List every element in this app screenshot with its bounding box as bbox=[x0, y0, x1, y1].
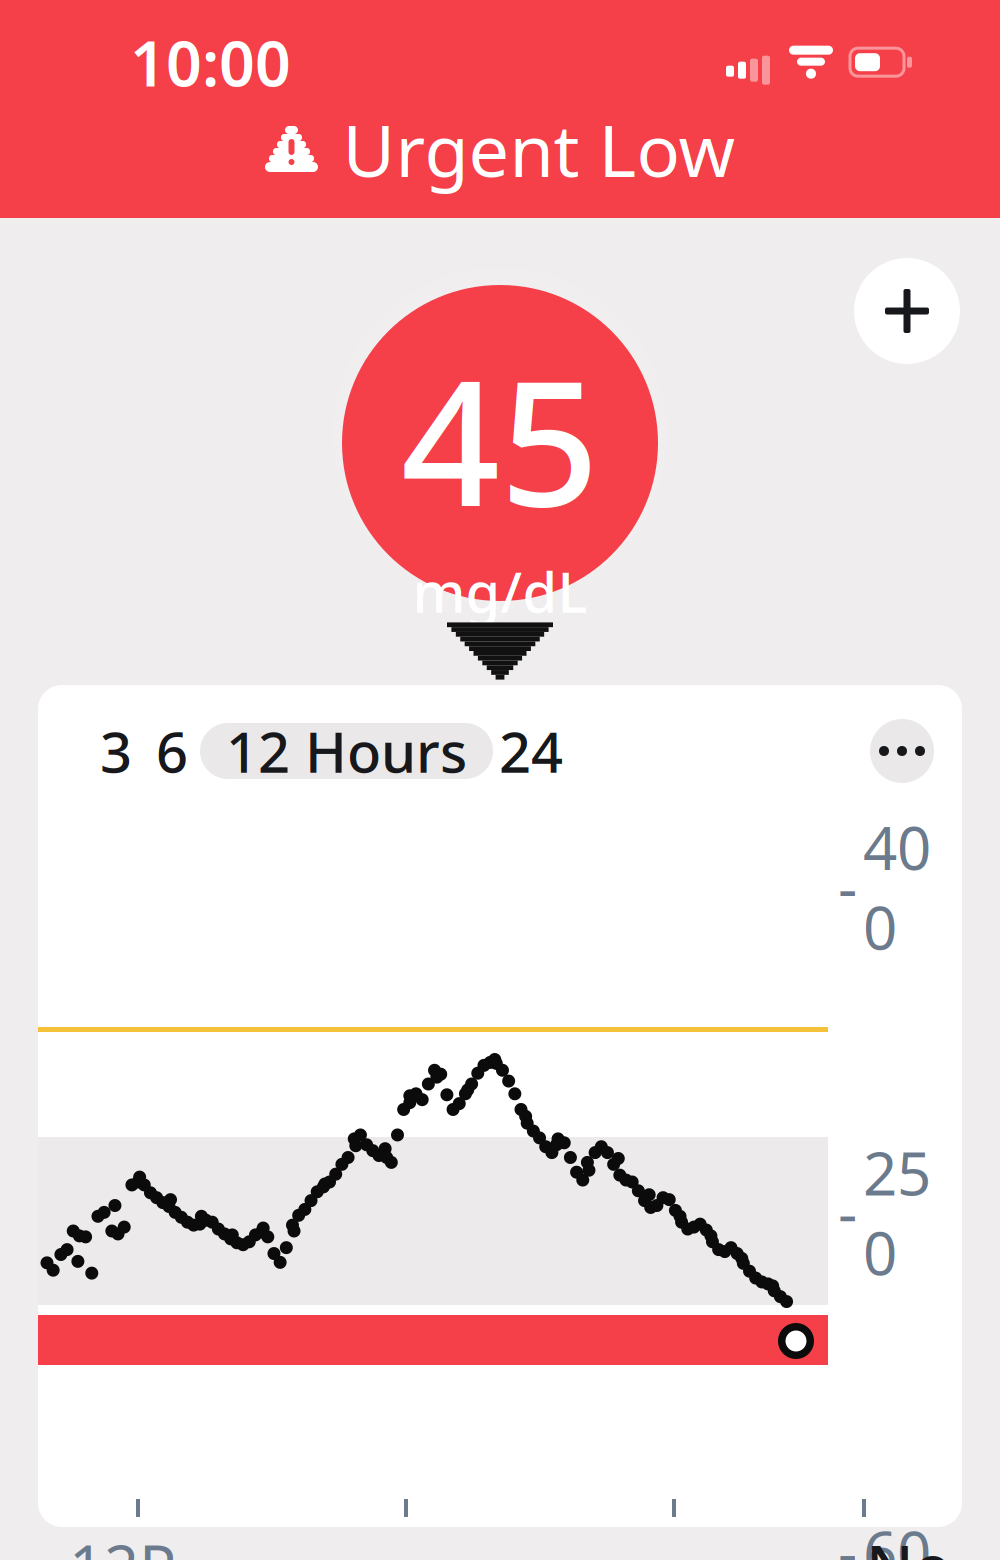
staticText: 24 bbox=[499, 714, 563, 788]
staticText: - bbox=[838, 1172, 857, 1252]
button[interactable]: 6 bbox=[144, 722, 200, 780]
staticText: 6 bbox=[156, 714, 188, 788]
button[interactable]: 3 bbox=[88, 722, 144, 780]
staticText: - bbox=[838, 847, 857, 926]
staticText: Urgent Low bbox=[342, 101, 735, 197]
staticText: Now bbox=[866, 1525, 971, 1560]
staticText: - bbox=[838, 1512, 857, 1560]
staticText: 60 bbox=[863, 1512, 931, 1560]
staticText: 10:00 bbox=[130, 21, 291, 104]
staticText: 45 bbox=[401, 324, 599, 554]
staticText: 12PM bbox=[69, 1525, 196, 1560]
button[interactable]: Add bbox=[854, 258, 960, 364]
staticText: 250 bbox=[863, 1132, 931, 1292]
button[interactable]: 12 Hours bbox=[200, 723, 493, 779]
button[interactable]: 24 bbox=[493, 722, 569, 780]
button[interactable]: More bbox=[870, 719, 934, 783]
staticText: 3 bbox=[100, 714, 132, 788]
staticText: 400 bbox=[863, 807, 931, 966]
staticText: mg/dL bbox=[412, 554, 587, 628]
staticText: 12 Hours bbox=[226, 714, 467, 788]
